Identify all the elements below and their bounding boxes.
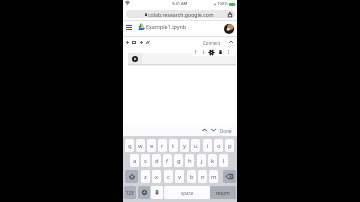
staticText: z <box>144 173 147 181</box>
button[interactable]: Run cell <box>128 53 142 64</box>
button[interactable]: o <box>214 139 223 152</box>
button[interactable]: Move cell down <box>200 49 206 55</box>
button[interactable]: Next field <box>209 126 217 134</box>
button[interactable]: r <box>158 139 167 152</box>
button[interactable]: m <box>209 170 218 183</box>
button[interactable]: Done <box>220 126 232 136</box>
staticText: n <box>201 173 205 181</box>
staticText: t <box>172 142 175 150</box>
button[interactable]: s <box>141 154 150 167</box>
button[interactable]: Share <box>226 11 233 18</box>
button[interactable]: d <box>152 154 161 167</box>
button[interactable]: w <box>136 139 145 152</box>
button[interactable]: v <box>175 170 184 183</box>
staticText: g <box>177 157 181 165</box>
button[interactable]: f <box>163 154 172 167</box>
staticText: o <box>217 142 221 150</box>
button[interactable]: x <box>152 170 161 183</box>
staticText: return <box>216 190 230 196</box>
button[interactable]: z <box>141 170 150 183</box>
button[interactable]: Add code cell <box>126 38 140 47</box>
button[interactable]: c <box>164 170 173 183</box>
staticText: k <box>211 157 215 165</box>
button[interactable]: g <box>174 154 183 167</box>
staticText: u <box>194 142 198 150</box>
staticText: l <box>223 157 225 165</box>
staticText: p <box>228 142 232 150</box>
staticText: i <box>207 142 209 150</box>
button[interactable]: b <box>187 170 196 183</box>
button[interactable]: Address bar <box>126 10 235 18</box>
staticText: w <box>138 142 143 150</box>
button[interactable]: Menu <box>124 22 134 32</box>
staticText: a <box>133 157 137 165</box>
button[interactable]: More options <box>225 49 231 55</box>
button[interactable]: y <box>180 139 189 152</box>
button[interactable]: u <box>191 139 200 152</box>
staticText: space <box>181 190 194 196</box>
staticText: s <box>144 157 147 165</box>
staticText: y <box>183 142 187 150</box>
button[interactable]: t <box>169 139 178 152</box>
button[interactable]: Previous field <box>200 126 208 134</box>
staticText: Done <box>220 128 232 134</box>
staticText: v <box>178 173 181 181</box>
staticText: 123 <box>126 190 134 196</box>
staticText: x <box>155 173 159 181</box>
button[interactable]: Connect <box>203 38 221 47</box>
staticText: c <box>167 173 170 181</box>
button[interactable]: i <box>203 139 212 152</box>
button[interactable]: Cell settings <box>208 49 214 55</box>
button[interactable]: p <box>225 139 234 152</box>
button[interactable]: Space <box>164 186 210 199</box>
staticText: f <box>166 157 169 165</box>
button[interactable]: n <box>198 170 207 183</box>
staticText: h <box>188 157 192 165</box>
button[interactable]: l <box>219 154 228 167</box>
staticText: Example1.ipynb <box>146 23 187 30</box>
staticText: j <box>201 157 203 165</box>
button[interactable]: q <box>125 139 134 152</box>
staticText: colab.research.google.com <box>148 11 214 18</box>
staticText: r <box>161 142 164 150</box>
button[interactable]: Numbers <box>124 186 136 199</box>
staticText: b <box>190 173 194 181</box>
staticText: q <box>128 142 132 150</box>
button[interactable]: Add text cell <box>140 38 154 47</box>
button[interactable]: Backspace <box>223 170 236 183</box>
button[interactable]: a <box>130 154 139 167</box>
button[interactable]: Emoji <box>138 186 150 199</box>
button[interactable]: Return <box>210 186 236 199</box>
button[interactable]: k <box>208 154 217 167</box>
staticText: d <box>155 157 159 165</box>
staticText: Connect <box>203 40 221 46</box>
button[interactable]: j <box>197 154 206 167</box>
staticText: 9:41 AM <box>172 1 188 6</box>
button[interactable]: Dictate <box>151 186 163 199</box>
button[interactable]: Move cell up <box>192 49 198 55</box>
button[interactable]: Account <box>224 24 234 34</box>
staticText: 100% <box>217 1 228 7</box>
staticText: e <box>150 142 154 150</box>
button[interactable]: h <box>185 154 194 167</box>
button[interactable]: Shift <box>125 170 138 183</box>
button[interactable]: e <box>147 139 156 152</box>
button[interactable]: Expand <box>227 38 234 45</box>
button[interactable]: Delete cell <box>217 49 223 55</box>
staticText: m <box>211 173 217 181</box>
